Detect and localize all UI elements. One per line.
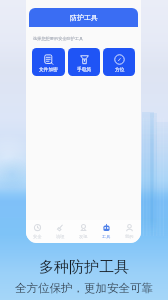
button[interactable]: 我的 xyxy=(118,220,141,243)
staticText: 全方位保护，更加安全可靠 xyxy=(15,281,153,295)
button[interactable]: 发现 xyxy=(72,220,95,243)
button[interactable]: 工具 xyxy=(95,220,118,243)
staticText: 工具 xyxy=(102,234,111,239)
button[interactable]: 手电筒 xyxy=(68,48,100,76)
button[interactable]: 安全 xyxy=(26,220,49,243)
staticText: 安全 xyxy=(33,234,42,239)
staticText: 发现 xyxy=(79,234,88,239)
staticText: 清理 xyxy=(56,234,65,239)
staticText: 我的 xyxy=(125,234,134,239)
button[interactable]: 清理 xyxy=(49,220,72,243)
staticText: 选择您想要的安全防护工具 xyxy=(33,36,84,41)
staticText: 防护工具 xyxy=(70,13,98,22)
staticText: 手电筒 xyxy=(77,66,92,72)
button[interactable]: 方位 xyxy=(103,48,135,76)
staticText: 文件加密 xyxy=(39,66,58,72)
button[interactable]: 防护工具 xyxy=(29,8,138,27)
staticText: 方位 xyxy=(115,66,125,72)
staticText: 多种防护工具 xyxy=(39,258,129,277)
button[interactable]: 文件加密 xyxy=(32,48,65,76)
